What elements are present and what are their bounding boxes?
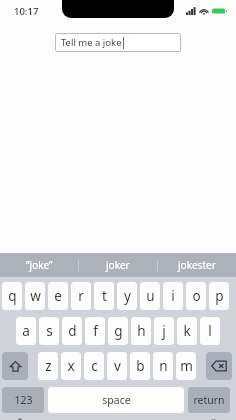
button[interactable]: space [48,387,184,413]
button[interactable]: q [2,282,22,310]
button[interactable]: m [176,352,196,380]
button[interactable]: r [71,282,91,310]
staticText: v [114,357,121,375]
button[interactable]: o [186,282,206,310]
staticText: space [102,393,131,407]
staticText: 123 [14,393,33,407]
button[interactable]: l [200,317,220,345]
staticText: joker [106,258,130,272]
staticText: z [45,357,52,375]
staticText: Tell me a joke [61,36,122,49]
button[interactable]: j [154,317,174,345]
staticText: l [208,322,212,340]
staticText: x [67,357,75,375]
button[interactable]: f [85,317,105,345]
staticText: c [91,357,98,375]
button[interactable]: Backspace [206,352,232,380]
staticText: f [93,322,98,340]
staticText: h [137,322,146,340]
button[interactable]: p [209,282,229,310]
button[interactable]: w [25,282,45,310]
button[interactable]: v [107,352,127,380]
staticText: q [8,287,17,305]
button[interactable]: t [94,282,114,310]
button[interactable]: Tell me a joke [55,33,181,52]
button[interactable]: s [39,317,59,345]
button[interactable]: y [117,282,137,310]
button[interactable]: b [130,352,150,380]
button[interactable]: “joke” [0,253,78,277]
button[interactable]: i [163,282,183,310]
button[interactable]: Shift [2,352,28,380]
staticText: e [54,287,62,305]
button[interactable]: 123 [2,387,44,413]
staticText: b [136,357,145,375]
staticText: j [162,322,166,340]
staticText: t [102,287,107,305]
staticText: w [30,287,41,305]
button[interactable]: a [16,317,36,345]
button[interactable]: joker [79,253,157,277]
button[interactable]: e [48,282,68,310]
button[interactable]: jokester [158,253,236,277]
staticText: o [192,287,201,305]
button[interactable]: c [84,352,104,380]
button[interactable]: return [188,387,230,413]
staticText: y [124,287,131,305]
staticText: i [171,287,175,305]
button[interactable]: u [140,282,160,310]
staticText: d [68,322,77,340]
staticText: s [46,322,53,340]
button[interactable]: z [38,352,58,380]
staticText: k [183,322,191,340]
staticText: u [146,287,155,305]
staticText: g [114,322,123,340]
staticText: r [78,287,84,305]
button[interactable]: d [62,317,82,345]
button[interactable]: h [131,317,151,345]
staticText: jokester [178,258,216,272]
staticText: “joke” [26,258,53,272]
button[interactable]: k [177,317,197,345]
staticText: m [180,357,193,375]
button[interactable]: g [108,317,128,345]
button[interactable]: n [153,352,173,380]
staticText: 10:17 [14,5,39,18]
staticText: n [159,357,168,375]
staticText: return [193,393,225,407]
staticText: p [215,287,224,305]
staticText: a [22,322,30,340]
button[interactable]: x [61,352,81,380]
